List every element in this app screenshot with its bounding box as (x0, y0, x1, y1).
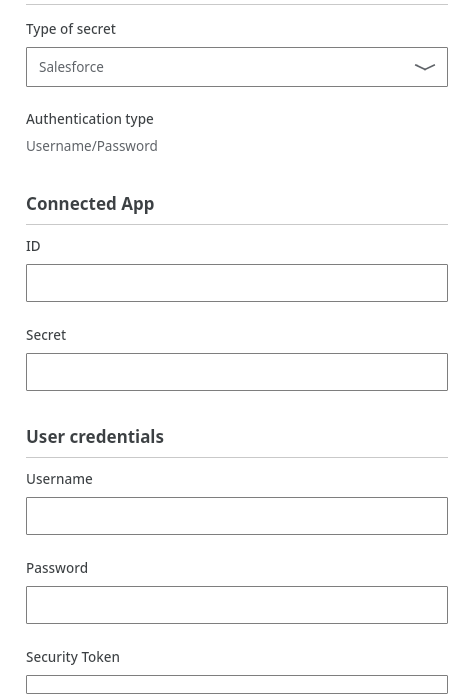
staticText: Security Token (26, 648, 121, 666)
button[interactable]: Username (26, 497, 448, 535)
staticText: Authentication type (26, 110, 154, 128)
button[interactable]: Security Token (26, 675, 448, 694)
button[interactable]: Secret (26, 353, 448, 391)
button[interactable]: ID (26, 264, 448, 302)
staticText: User credentials (26, 425, 164, 448)
staticText: Secret (26, 326, 67, 344)
staticText: Type of secret (26, 20, 116, 38)
button[interactable]: Password (26, 586, 448, 624)
staticText: Connected App (26, 192, 155, 215)
staticText: Salesforce (39, 58, 104, 76)
button[interactable]: Salesforce (26, 47, 448, 87)
staticText: Username (26, 470, 93, 488)
staticText: Password (26, 559, 89, 577)
other: Open secret type list (414, 56, 436, 78)
staticText: Username/Password (26, 137, 158, 155)
staticText: ID (26, 237, 41, 255)
